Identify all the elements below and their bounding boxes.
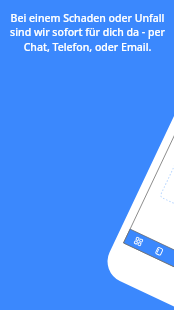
staticText: Bei einem Schaden oder Unfall sind wir s… xyxy=(10,11,165,55)
